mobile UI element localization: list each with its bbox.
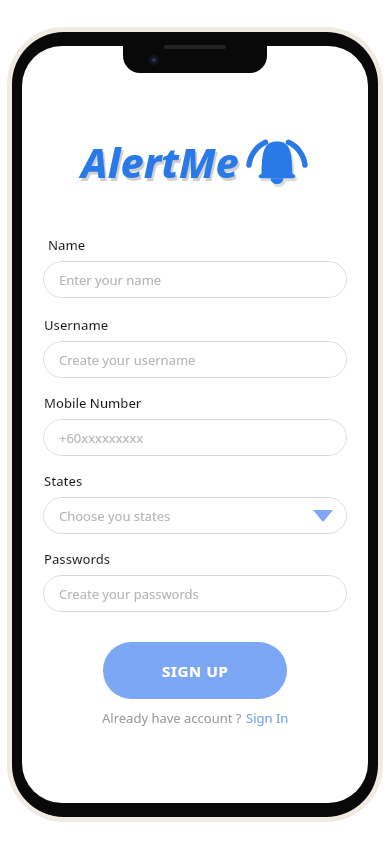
staticText: Enter your name: [59, 271, 162, 289]
staticText: Sign In: [246, 709, 289, 727]
staticText: Choose you states: [59, 507, 171, 525]
staticText: Create your username: [59, 351, 196, 369]
staticText: States: [44, 472, 83, 490]
staticText: AlertMe: [83, 137, 241, 193]
staticText: AlertMe: [81, 134, 239, 190]
other: Choose state: [313, 510, 333, 522]
button[interactable]: Enter your name: [43, 261, 347, 298]
staticText: Create your passwords: [59, 585, 199, 603]
other: Alert bell: [245, 130, 309, 194]
button[interactable]: Choose you states: [43, 497, 347, 534]
button[interactable]: +60xxxxxxxxx: [43, 419, 347, 456]
button[interactable]: Create your passwords: [43, 575, 347, 612]
staticText: Already have account ?: [102, 709, 242, 727]
staticText: +60xxxxxxxxx: [59, 429, 144, 447]
button[interactable]: Sign In: [246, 709, 289, 727]
staticText: Username: [44, 316, 109, 334]
button[interactable]: SIGN UP: [103, 642, 287, 699]
staticText: Name: [48, 236, 86, 254]
button[interactable]: Create your username: [43, 341, 347, 378]
staticText: SIGN UP: [162, 661, 229, 681]
staticText: Passwords: [44, 550, 111, 568]
staticText: Mobile Number: [44, 394, 142, 412]
